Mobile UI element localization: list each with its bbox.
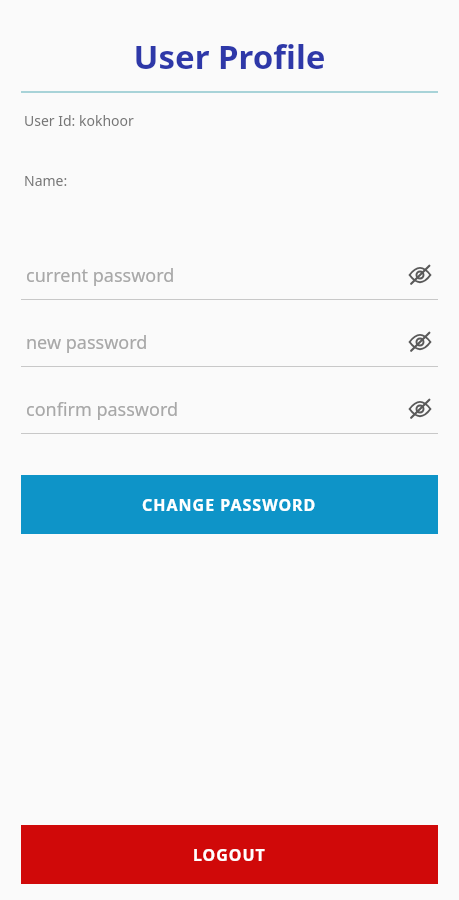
button[interactable]: CHANGE PASSWORD [21,475,438,534]
button[interactable]: confirm password [21,391,438,434]
button[interactable]: LOGOUT [21,825,438,884]
staticText: confirm password [26,397,402,422]
button[interactable]: Show password [402,324,438,360]
staticText: User Profile [0,34,459,79]
staticText: LOGOUT [193,844,266,866]
button[interactable]: Show password [402,257,438,293]
staticText: current password [26,263,402,288]
staticText: Name: [24,171,68,190]
button[interactable]: new password [21,324,438,367]
staticText: CHANGE PASSWORD [142,494,317,516]
staticText: new password [26,330,402,355]
button[interactable]: Show password [402,391,438,427]
button[interactable]: current password [21,257,438,300]
staticText: User Id: kokhoor [24,111,134,130]
